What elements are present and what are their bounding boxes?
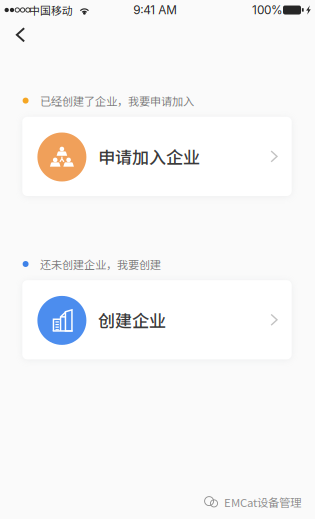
staticText: 申请加入企业 (98, 144, 200, 169)
button[interactable]: 创建企业 (22, 280, 292, 359)
staticText: 中国移动 (29, 2, 73, 18)
button[interactable]: 申请加入企业 (22, 117, 292, 196)
staticText: 已经创建了企业，我要申请加入 (40, 92, 194, 109)
staticText: 还未创建企业，我要创建 (40, 256, 161, 272)
staticText: 100% (252, 3, 283, 17)
staticText: 创建企业 (98, 307, 166, 332)
staticText: 9:41 AM (133, 3, 177, 17)
staticText: EMCat设备管理 (224, 494, 301, 510)
button[interactable]: Back (0, 20, 41, 54)
